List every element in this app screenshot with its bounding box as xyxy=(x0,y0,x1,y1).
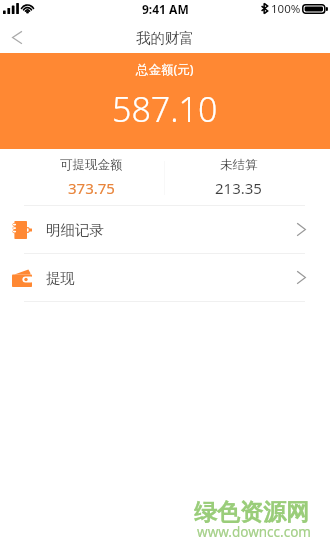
button[interactable]: 未结算 xyxy=(165,149,330,205)
staticText: www.downcc.com xyxy=(197,523,311,541)
staticText: 213.35 xyxy=(215,178,262,198)
staticText: 未结算 xyxy=(220,157,258,173)
staticText: 我的财富 xyxy=(136,29,194,47)
staticText: 9:41 AM xyxy=(142,1,189,17)
button[interactable]: Back xyxy=(0,22,36,53)
button[interactable]: 可提现金额 xyxy=(0,149,165,205)
staticText: 可提现金额 xyxy=(60,157,123,173)
staticText: 587.10 xyxy=(112,86,218,132)
staticText: 总金额(元) xyxy=(136,61,194,78)
staticText: 提现 xyxy=(46,269,75,287)
staticText: 373.75 xyxy=(68,178,115,198)
staticText: 绿色资源网 xyxy=(194,498,309,527)
staticText: 明细记录 xyxy=(46,221,104,239)
button[interactable]: 明细记录 xyxy=(0,206,330,253)
staticText: 100% xyxy=(271,1,301,17)
button[interactable]: 提现 xyxy=(0,254,330,301)
